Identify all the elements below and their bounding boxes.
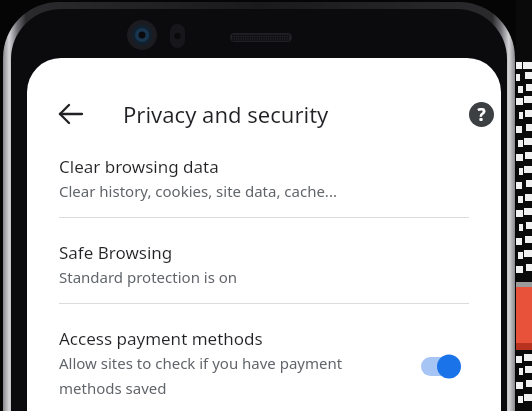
button[interactable]: Access payment methods toggle (419, 350, 473, 382)
button[interactable]: Help (459, 92, 501, 136)
staticText: Access payment methods (59, 327, 263, 350)
staticText: Privacy and security (123, 99, 329, 129)
staticText: Safe Browsing (59, 241, 173, 264)
staticText: ? (477, 103, 486, 126)
staticText: Clear browsing data (59, 155, 219, 178)
button[interactable]: Clear browsing data (27, 144, 501, 218)
staticText: Clear history, cookies, site data, cache… (59, 181, 337, 201)
button[interactable]: Back (49, 92, 93, 136)
staticText: Allow sites to check if you have payment… (59, 353, 343, 398)
button[interactable]: Safe Browsing (27, 230, 501, 304)
staticText: Standard protection is on (59, 267, 238, 287)
button[interactable]: Access payment methods (27, 316, 501, 411)
